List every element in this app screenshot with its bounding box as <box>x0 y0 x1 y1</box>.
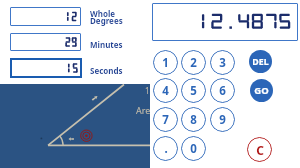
staticText: 1 <box>162 55 169 71</box>
button[interactable]: 2 <box>181 50 206 75</box>
staticText: Are <box>136 104 151 116</box>
staticText: 6 <box>219 83 226 99</box>
button[interactable]: 1 <box>153 50 178 75</box>
button[interactable]: 8 <box>181 107 206 132</box>
button[interactable]: 5 <box>181 78 206 103</box>
staticText: 5 <box>190 83 197 99</box>
button[interactable]: Result 12.4875 <box>152 3 298 41</box>
staticText: 1 <box>145 85 150 96</box>
staticText: 0 <box>190 141 197 157</box>
button[interactable]: 9 <box>210 107 235 132</box>
button[interactable]: 6 <box>210 78 235 103</box>
button[interactable]: 29 <box>10 33 81 51</box>
staticText: Whole Degrees <box>90 8 123 26</box>
button[interactable]: 3 <box>210 50 235 75</box>
button[interactable]: . <box>153 136 178 161</box>
staticText: 7 <box>162 112 169 128</box>
staticText: C <box>256 142 264 158</box>
button[interactable]: Delete <box>249 50 272 73</box>
staticText: 2 <box>190 55 197 71</box>
staticText: GO <box>254 84 269 97</box>
button[interactable]: 7 <box>153 107 178 132</box>
staticText: 9 <box>219 112 226 128</box>
staticText: 3 <box>219 55 226 71</box>
staticText: 4 <box>162 83 169 99</box>
staticText: Minutes <box>90 39 123 50</box>
staticText: . <box>164 141 168 157</box>
button[interactable]: 15 <box>10 58 82 78</box>
button[interactable]: 0 <box>181 136 206 161</box>
button[interactable]: Clear <box>247 137 272 162</box>
button[interactable]: Go <box>250 79 273 102</box>
button[interactable]: 4 <box>153 78 178 103</box>
staticText: Seconds <box>90 65 123 76</box>
staticText: 8 <box>190 112 197 128</box>
staticText: DEL <box>252 56 269 68</box>
button[interactable]: 12 <box>10 7 81 26</box>
